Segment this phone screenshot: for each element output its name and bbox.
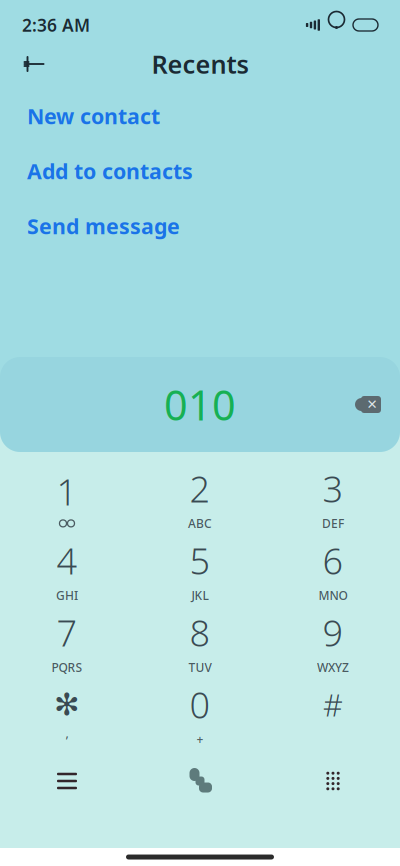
- staticText: 1: [56, 468, 77, 515]
- staticText: 9: [322, 609, 343, 656]
- staticText: 2:36 AM: [22, 13, 90, 36]
- button[interactable]: 2: [133, 462, 266, 534]
- button[interactable]: Call: [133, 750, 266, 812]
- button[interactable]: 6: [266, 534, 399, 606]
- staticText: JKL: [191, 587, 208, 603]
- staticText: MNO: [318, 587, 347, 603]
- staticText: TUV: [188, 659, 211, 675]
- staticText: 010: [164, 377, 236, 432]
- staticText: 7: [56, 609, 77, 656]
- button[interactable]: 0: [133, 678, 266, 750]
- button[interactable]: 4: [0, 534, 133, 606]
- staticText: ABC: [188, 515, 212, 531]
- button[interactable]: ✻: [0, 678, 133, 750]
- staticText: New contact: [27, 102, 160, 130]
- staticText: +: [196, 731, 203, 747]
- staticText: 8: [189, 609, 210, 656]
- staticText: PQRS: [51, 659, 82, 675]
- staticText: DEF: [322, 515, 344, 531]
- staticText: 6: [322, 537, 343, 584]
- staticText: WXYZ: [317, 659, 349, 675]
- staticText: ,: [65, 725, 68, 741]
- staticText: 2: [189, 465, 210, 512]
- button[interactable]: Add to contacts: [0, 151, 400, 191]
- staticText: Add to contacts: [27, 157, 193, 185]
- button[interactable]: New contact: [0, 96, 400, 136]
- staticText: GHI: [56, 587, 78, 603]
- staticText: 3: [322, 465, 343, 512]
- button[interactable]: Call log options: [0, 750, 133, 812]
- button[interactable]: #: [266, 678, 399, 750]
- button[interactable]: Send message: [0, 206, 400, 246]
- staticText: Send message: [27, 212, 180, 240]
- staticText: ✻: [54, 687, 80, 722]
- button[interactable]: 8: [133, 606, 266, 678]
- staticText: ✕: [366, 397, 377, 412]
- staticText: 5: [189, 537, 210, 584]
- button[interactable]: 9: [266, 606, 399, 678]
- staticText: 0: [189, 681, 210, 728]
- staticText: #: [323, 684, 343, 725]
- button[interactable]: Keypad: [266, 750, 399, 812]
- button[interactable]: 3: [266, 462, 399, 534]
- staticText: Recents: [151, 47, 248, 81]
- button[interactable]: Back: [12, 44, 56, 84]
- button[interactable]: 7: [0, 606, 133, 678]
- button[interactable]: 1: [0, 462, 133, 534]
- staticText: 4: [56, 537, 77, 584]
- button[interactable]: Delete: [346, 382, 390, 426]
- button[interactable]: 5: [133, 534, 266, 606]
